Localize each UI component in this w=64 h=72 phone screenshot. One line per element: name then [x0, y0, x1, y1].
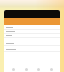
button[interactable]: Tab	[10, 66, 16, 72]
button[interactable]: Tab	[48, 66, 54, 72]
button[interactable]: Tab	[23, 66, 29, 72]
button[interactable]	[4, 48, 60, 52]
button[interactable]	[4, 26, 60, 30]
button[interactable]	[4, 30, 60, 34]
button[interactable]	[4, 42, 60, 46]
button[interactable]: Tab	[35, 66, 41, 72]
button[interactable]	[4, 34, 60, 38]
